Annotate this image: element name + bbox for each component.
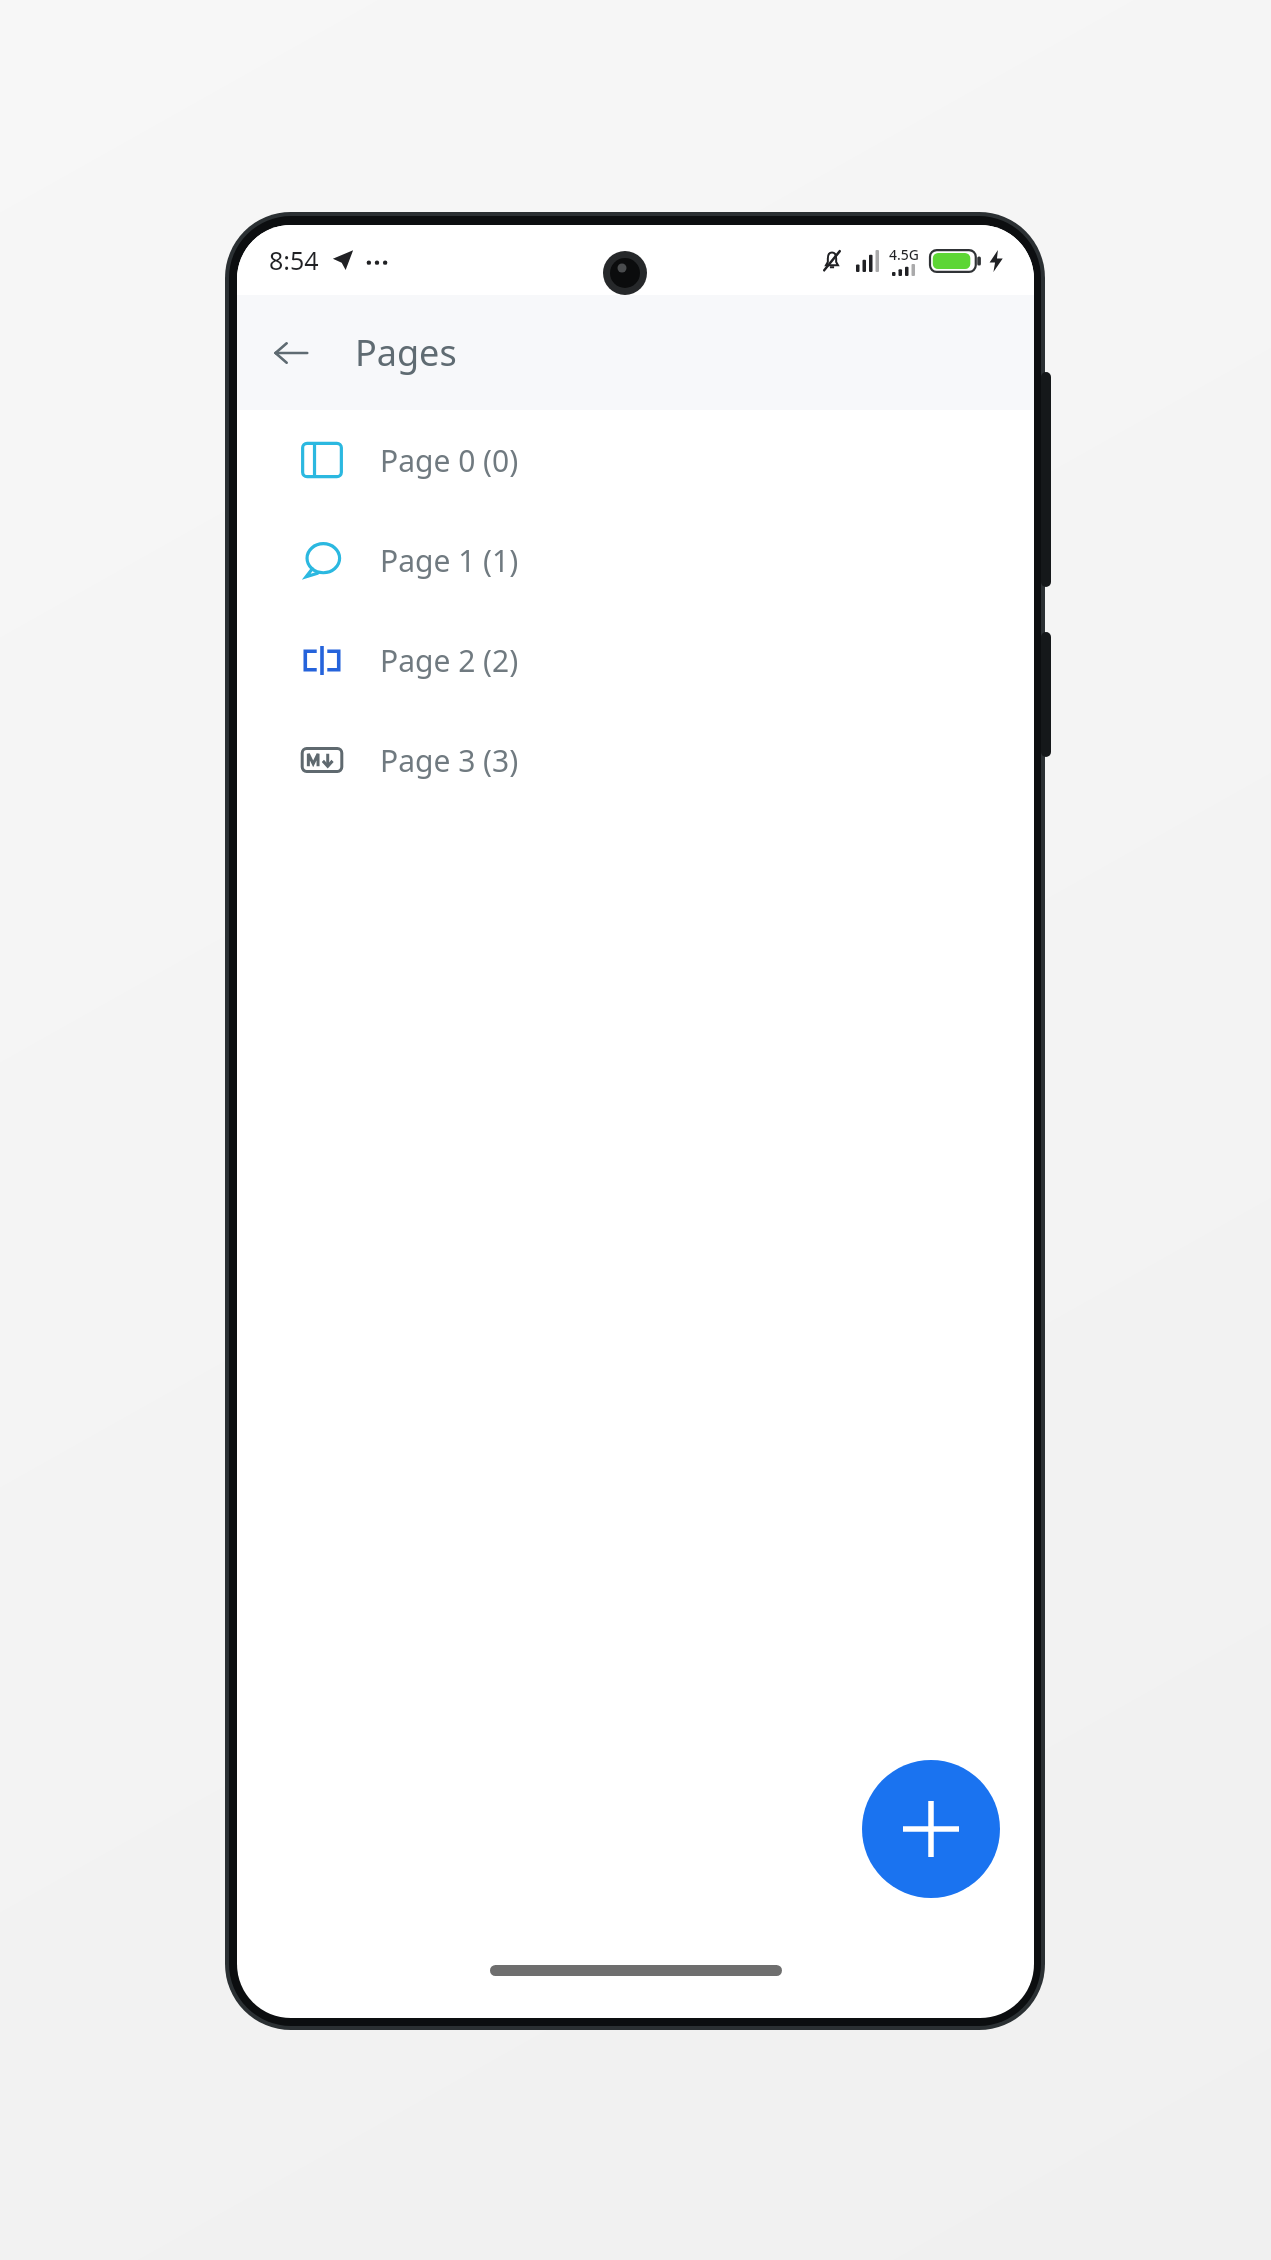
- staticText: Page 2 (2): [380, 640, 519, 681]
- staticText: Pages: [355, 328, 457, 377]
- button[interactable]: Page 0 (0): [237, 410, 1034, 510]
- button[interactable]: Page 1 (1): [237, 510, 1034, 610]
- button[interactable]: Back: [253, 315, 329, 391]
- button[interactable]: Page 2 (2): [237, 610, 1034, 710]
- staticText: 4.5G: [889, 245, 920, 264]
- button[interactable]: Page 3 (3): [237, 710, 1034, 810]
- staticText: 8:54: [269, 243, 319, 277]
- staticText: Page 1 (1): [380, 540, 519, 581]
- staticText: Page 3 (3): [380, 740, 519, 781]
- button[interactable]: Add page: [862, 1760, 1000, 1898]
- staticText: Page 0 (0): [380, 440, 519, 481]
